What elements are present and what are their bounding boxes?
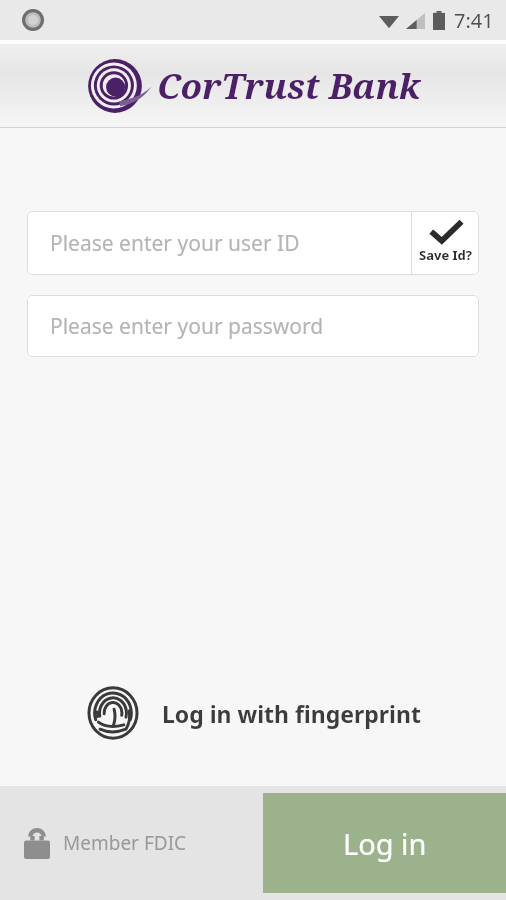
- button[interactable]: Please enter your user ID: [27, 211, 479, 275]
- button[interactable]: Save Id: [412, 212, 479, 274]
- staticText: CorTrust Bank: [157, 62, 420, 110]
- button[interactable]: Log in with fingerprint: [0, 678, 506, 748]
- staticText: Please enter your user ID: [50, 229, 300, 258]
- other: Save Id: [431, 222, 461, 244]
- button[interactable]: Log in: [263, 793, 506, 893]
- staticText: Log in with fingerprint: [162, 698, 421, 729]
- staticText: Log in: [343, 824, 427, 863]
- staticText: Save Id?: [419, 246, 472, 264]
- staticText: Member FDIC: [63, 830, 187, 856]
- button[interactable]: Member FDIC: [24, 827, 187, 859]
- button[interactable]: Please enter your password: [27, 295, 479, 357]
- staticText: Please enter your password: [50, 312, 324, 341]
- staticText: 7:41: [454, 7, 494, 34]
